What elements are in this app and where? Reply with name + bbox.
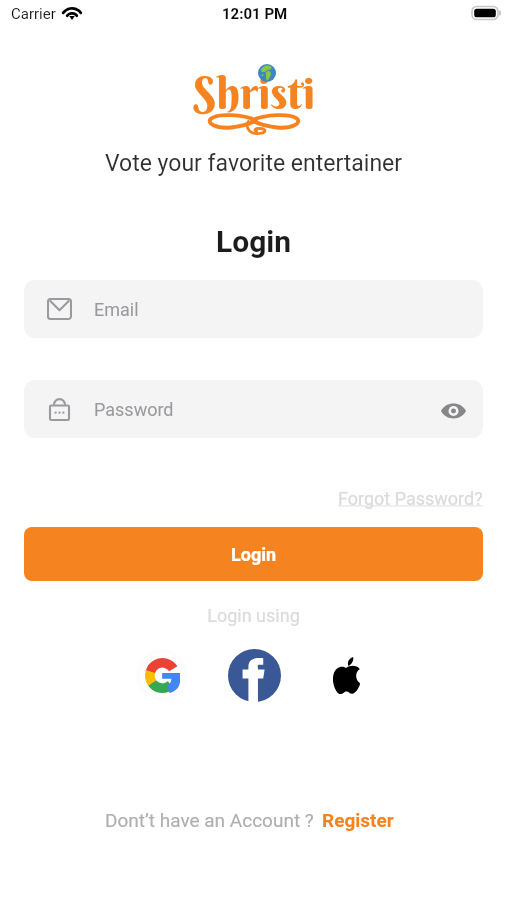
button[interactable]: Password xyxy=(24,380,483,438)
staticText: Carrier xyxy=(11,5,56,23)
staticText: Login using xyxy=(0,605,507,626)
staticText: Email xyxy=(94,299,139,320)
staticText: Register xyxy=(322,809,394,831)
staticText: Login xyxy=(0,224,507,259)
staticText: Password xyxy=(94,399,174,420)
staticText: Vote your favorite entertainer xyxy=(0,150,507,177)
button[interactable]: Login xyxy=(24,527,483,581)
button[interactable]: Forgot Password? xyxy=(338,488,483,509)
button[interactable]: Sign in with Facebook xyxy=(227,648,281,702)
staticText: Forgot Password? xyxy=(338,488,483,509)
button[interactable]: Dont’t have an Account ? xyxy=(105,809,394,831)
staticText: Shristi xyxy=(193,65,316,121)
button[interactable]: Sign in with Apple xyxy=(319,648,373,702)
button[interactable]: Sign in with Google xyxy=(135,648,189,702)
button[interactable]: Show password xyxy=(434,392,472,430)
staticText: Dont’t have an Account ? xyxy=(105,809,314,831)
staticText: Login xyxy=(231,544,277,565)
staticText: 12:01 PM xyxy=(222,5,288,23)
button[interactable]: Email xyxy=(24,280,483,338)
